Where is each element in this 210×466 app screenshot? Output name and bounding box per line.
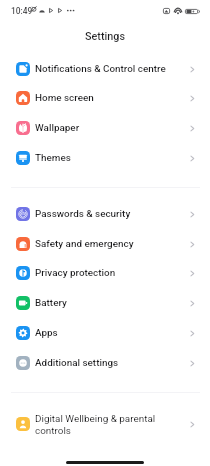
button[interactable]: Themes (0, 143, 210, 173)
staticText: Privacy protection (35, 267, 116, 279)
button[interactable]: Passwords & security (0, 199, 210, 229)
staticText: Home screen (35, 92, 94, 104)
other: Wi-Fi (174, 8, 182, 14)
other: Alarm off (31, 6, 37, 12)
button[interactable]: Privacy protection (0, 258, 210, 288)
staticText: Settings (85, 30, 125, 43)
staticText: Apps (35, 327, 58, 339)
button[interactable]: Home screen (0, 83, 210, 113)
button[interactable]: Battery (0, 288, 210, 318)
other: Do not disturb (163, 8, 170, 14)
button[interactable]: Digital Wellbeing & parental controls (0, 409, 210, 441)
button[interactable]: Safety and emergency (0, 229, 210, 259)
staticText: 10:49 (11, 6, 33, 16)
other: Battery (185, 9, 200, 14)
button[interactable]: Apps (0, 318, 210, 348)
button[interactable]: Notifications & Control centre (0, 54, 210, 84)
button[interactable]: Additional settings (0, 348, 210, 378)
staticText: Battery (35, 297, 67, 309)
staticText: Passwords & security (35, 208, 131, 220)
staticText: Safety and emergency (35, 238, 134, 250)
staticText: Themes (35, 152, 71, 164)
staticText: Wallpaper (35, 122, 80, 134)
button[interactable]: Wallpaper (0, 113, 210, 143)
staticText: Digital Wellbeing & parental controls (35, 413, 156, 437)
staticText: Notifications & Control centre (35, 63, 166, 75)
staticText: Additional settings (35, 357, 119, 369)
